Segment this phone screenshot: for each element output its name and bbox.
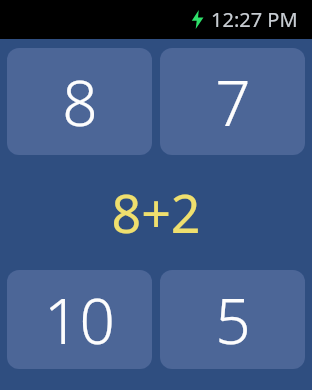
other: Charging (191, 10, 204, 29)
button[interactable]: 8 (7, 48, 152, 155)
staticText: 10 (44, 278, 115, 362)
button[interactable]: 10 (7, 270, 152, 369)
staticText: 12:27 PM (211, 6, 298, 33)
button[interactable]: 7 (160, 48, 305, 155)
staticText: 7 (215, 60, 251, 144)
staticText: 8+2 (111, 177, 201, 248)
staticText: 8 (62, 60, 98, 144)
staticText: 5 (215, 278, 251, 362)
button[interactable]: 5 (160, 270, 305, 369)
